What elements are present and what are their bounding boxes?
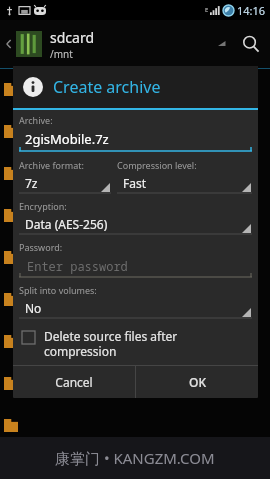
button[interactable]: Data (AES-256) (19, 214, 252, 236)
staticText: Cancel (55, 374, 93, 390)
staticText: OK (189, 374, 206, 390)
staticText: /mnt (50, 47, 73, 61)
staticText: Split into volumes: (19, 284, 97, 296)
staticText: Fast (123, 175, 147, 191)
staticText: 14:16 (237, 3, 266, 18)
button[interactable]: Enter password (19, 255, 252, 279)
staticText: Data (AES-256) (25, 216, 108, 232)
button[interactable]: Back (2, 37, 16, 51)
staticText: 7z (25, 175, 38, 191)
staticText: 康掌门 • KANGZM.COM (55, 448, 215, 468)
staticText: Compression level: (117, 159, 197, 171)
staticText: 2gisMobile.7z (25, 130, 109, 148)
button[interactable]: More options (214, 36, 230, 52)
button[interactable]: No (19, 298, 252, 320)
button[interactable]: 7z (19, 173, 111, 195)
button[interactable]: Cancel (13, 366, 135, 398)
button[interactable]: Fast (117, 173, 252, 195)
staticText: E (205, 6, 209, 14)
button[interactable]: Search (236, 29, 266, 59)
staticText: Archive format: (19, 159, 84, 171)
staticText: Password: (19, 241, 63, 253)
staticText: Delete source files after compression (44, 328, 252, 359)
button[interactable]: OK (136, 366, 258, 398)
staticText: Archive: (19, 114, 53, 126)
button[interactable]: Delete source files after compression (19, 328, 252, 365)
staticText: Create archive (53, 76, 161, 98)
staticText: sdcard (50, 28, 95, 47)
button[interactable]: 2gisMobile.7z (19, 128, 252, 154)
staticText: Enter password (27, 258, 128, 274)
staticText: Encryption: (19, 200, 67, 212)
staticText: No (25, 300, 42, 316)
